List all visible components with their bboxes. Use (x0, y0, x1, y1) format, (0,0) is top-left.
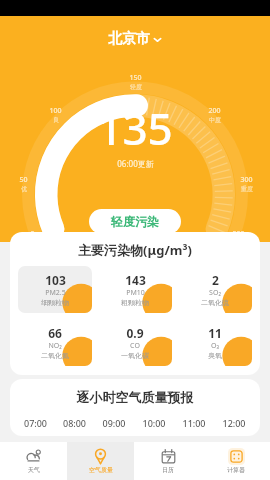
staticText: 100 (49, 106, 62, 116)
button[interactable]: 2 (178, 266, 252, 313)
staticText: 150 (129, 73, 142, 83)
staticText: 0.9 (126, 325, 144, 341)
staticText: 103 (45, 272, 66, 288)
staticText: 10:00 (134, 417, 174, 429)
staticText: 50 (19, 175, 28, 185)
button[interactable]: 天气 (0, 442, 67, 480)
staticText: 500 (232, 229, 245, 239)
staticText: 空气质量 (89, 466, 113, 474)
staticText: 轻度 (130, 83, 142, 91)
button[interactable]: 计算器 (202, 442, 270, 480)
staticText: 135 (97, 98, 173, 158)
button[interactable]: 日历 (134, 442, 202, 480)
button[interactable]: 北京市 (102, 28, 168, 50)
button[interactable]: 103 (18, 266, 92, 313)
button[interactable]: 11 (178, 319, 252, 366)
staticText: 中度 (209, 116, 221, 124)
staticText: 300 (240, 175, 253, 185)
button[interactable]: 轻度污染 (89, 209, 181, 234)
staticText: 重度 (241, 185, 253, 193)
staticText: 09:00 (94, 417, 134, 429)
button[interactable]: 空气质量 (67, 442, 134, 480)
staticText: 良 (53, 116, 59, 124)
staticText: 细颗粒物 (41, 298, 69, 307)
staticText: 粗颗粒物 (121, 298, 149, 307)
staticText: 北京市 (108, 30, 150, 48)
staticText: SO₂ (209, 288, 221, 298)
button[interactable]: 143 (98, 266, 172, 313)
staticText: 66 (48, 325, 62, 341)
staticText: O₃ (211, 341, 219, 351)
staticText: 天气 (28, 466, 40, 474)
staticText: PM10 (126, 288, 145, 298)
staticText: PM2.5 (45, 288, 66, 298)
staticText: NO₂ (48, 341, 62, 351)
staticText: 07:00 (16, 417, 55, 429)
staticText: 优 (21, 185, 27, 193)
button[interactable]: 0.9 (98, 319, 172, 366)
staticText: 二氧化硫 (201, 298, 229, 307)
staticText: 轻度污染 (111, 214, 159, 229)
staticText: 11 (208, 325, 222, 341)
staticText: 143 (125, 272, 146, 288)
staticText: 一氧化碳 (121, 351, 149, 360)
button[interactable]: 66 (18, 319, 92, 366)
staticText: 06:00更新 (117, 158, 154, 169)
staticText: 2 (212, 272, 219, 288)
staticText: 主要污染物(μg/m³) (10, 241, 260, 259)
staticText: CO (130, 341, 140, 351)
staticText: 11:00 (174, 417, 214, 429)
staticText: 日历 (162, 466, 174, 474)
staticText: 0 (30, 229, 35, 239)
staticText: 08:00 (55, 417, 94, 429)
staticText: 200 (208, 106, 221, 116)
staticText: 臭氧 (208, 351, 222, 360)
staticText: 12:00 (214, 417, 254, 429)
staticText: 逐小时空气质量预报 (10, 389, 260, 405)
staticText: 二氧化氮 (41, 351, 69, 360)
staticText: 计算器 (227, 466, 245, 474)
